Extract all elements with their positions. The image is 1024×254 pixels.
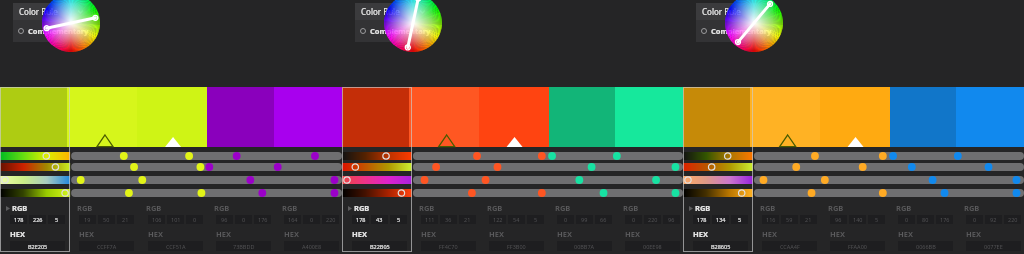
- button[interactable]: [342, 87, 409, 147]
- button[interactable]: 96: [830, 215, 847, 224]
- button[interactable]: [0, 176, 342, 184]
- button[interactable]: [0, 152, 342, 160]
- button[interactable]: 164: [284, 215, 301, 224]
- button[interactable]: [67, 87, 137, 147]
- button[interactable]: 178: [352, 215, 369, 224]
- button[interactable]: Color Rule: [13, 3, 90, 20]
- button[interactable]: [750, 87, 820, 147]
- button[interactable]: 5: [868, 215, 885, 224]
- button[interactable]: 106: [148, 215, 165, 224]
- staticText: 178: [356, 216, 366, 223]
- button[interactable]: [820, 87, 890, 147]
- button[interactable]: [0, 189, 342, 197]
- button[interactable]: 0: [625, 215, 642, 224]
- button[interactable]: Complementary: [355, 20, 432, 42]
- button[interactable]: 226: [29, 215, 46, 224]
- button[interactable]: [0, 87, 67, 147]
- button[interactable]: Color wheel: [384, 0, 442, 52]
- button[interactable]: 0066BB: [898, 241, 953, 251]
- button[interactable]: 176: [254, 215, 271, 224]
- staticText: HEX: [216, 229, 231, 239]
- button[interactable]: [409, 87, 479, 147]
- button[interactable]: 43: [371, 215, 388, 224]
- button[interactable]: 220: [644, 215, 661, 224]
- button[interactable]: [683, 189, 1024, 197]
- button[interactable]: 0077EE: [966, 241, 1021, 251]
- button[interactable]: 50: [98, 215, 115, 224]
- button[interactable]: [0, 163, 342, 171]
- button[interactable]: CCFF7A: [79, 241, 134, 251]
- button[interactable]: Complementary: [13, 20, 90, 42]
- button[interactable]: 140: [849, 215, 866, 224]
- button[interactable]: 5: [390, 215, 407, 224]
- button[interactable]: 73BBDD: [216, 241, 271, 251]
- button[interactable]: 220: [1004, 215, 1021, 224]
- button[interactable]: 111: [421, 215, 438, 224]
- button[interactable]: [342, 152, 683, 160]
- button[interactable]: B2E205: [10, 241, 65, 251]
- button[interactable]: 178: [693, 215, 710, 224]
- button[interactable]: Color wheel: [42, 0, 100, 52]
- button[interactable]: Color Rule: [696, 3, 773, 20]
- button[interactable]: 19: [79, 215, 96, 224]
- button[interactable]: CCF51A: [148, 241, 203, 251]
- button[interactable]: 5: [48, 215, 65, 224]
- button[interactable]: Color Rule: [355, 3, 432, 20]
- button[interactable]: 134: [712, 215, 729, 224]
- button[interactable]: [683, 176, 1024, 184]
- button[interactable]: 96: [216, 215, 233, 224]
- button[interactable]: [683, 163, 1024, 171]
- button[interactable]: 0: [898, 215, 915, 224]
- button[interactable]: [683, 87, 750, 147]
- button[interactable]: [342, 163, 683, 171]
- button[interactable]: 178: [10, 215, 27, 224]
- button[interactable]: 220: [322, 215, 339, 224]
- button[interactable]: 176: [936, 215, 953, 224]
- button[interactable]: 122: [489, 215, 506, 224]
- button[interactable]: 54: [508, 215, 525, 224]
- button[interactable]: 21: [459, 215, 476, 224]
- button[interactable]: 92: [985, 215, 1002, 224]
- button[interactable]: [137, 87, 207, 147]
- staticText: Complementary: [711, 26, 772, 36]
- button[interactable]: 0: [235, 215, 252, 224]
- button[interactable]: CCAA4F: [762, 241, 817, 251]
- button[interactable]: 36: [440, 215, 457, 224]
- button[interactable]: A400E8: [284, 241, 339, 251]
- button[interactable]: 0: [186, 215, 203, 224]
- button[interactable]: 80: [917, 215, 934, 224]
- button[interactable]: 5: [527, 215, 544, 224]
- button[interactable]: [683, 152, 1024, 160]
- button[interactable]: 116: [762, 215, 779, 224]
- button[interactable]: FFAA00: [830, 241, 885, 251]
- button[interactable]: 0: [303, 215, 320, 224]
- button[interactable]: 0: [966, 215, 983, 224]
- button[interactable]: 21: [800, 215, 817, 224]
- button[interactable]: 96: [663, 215, 680, 224]
- button[interactable]: FF4C70: [421, 241, 476, 251]
- button[interactable]: [342, 176, 683, 184]
- button[interactable]: [479, 87, 549, 147]
- button[interactable]: B28605: [693, 241, 748, 251]
- button[interactable]: 59: [781, 215, 798, 224]
- button[interactable]: 0: [557, 215, 574, 224]
- button[interactable]: 00EE98: [625, 241, 680, 251]
- button[interactable]: FF3B00: [489, 241, 544, 251]
- button[interactable]: 21: [117, 215, 134, 224]
- button[interactable]: 101: [167, 215, 184, 224]
- button[interactable]: 5: [731, 215, 748, 224]
- button[interactable]: 66: [595, 215, 612, 224]
- button[interactable]: Complementary: [696, 20, 773, 42]
- staticText: 50: [103, 216, 110, 223]
- button[interactable]: 00BB7A: [557, 241, 612, 251]
- button[interactable]: Color wheel: [725, 0, 783, 52]
- button[interactable]: B22B05: [352, 241, 407, 251]
- button[interactable]: [342, 189, 683, 197]
- button[interactable]: 99: [576, 215, 593, 224]
